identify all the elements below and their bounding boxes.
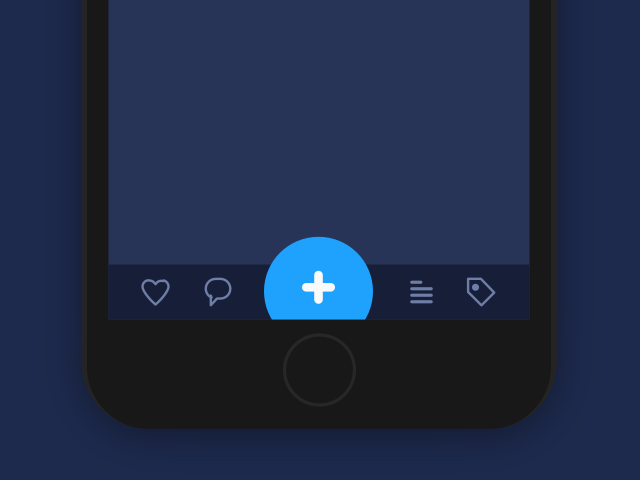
button[interactable]: Tags <box>439 264 523 319</box>
button[interactable]: Create <box>264 237 373 346</box>
button[interactable]: Feed <box>379 264 463 319</box>
button[interactable]: Likes <box>113 264 197 319</box>
button[interactable]: Comments <box>176 264 260 319</box>
